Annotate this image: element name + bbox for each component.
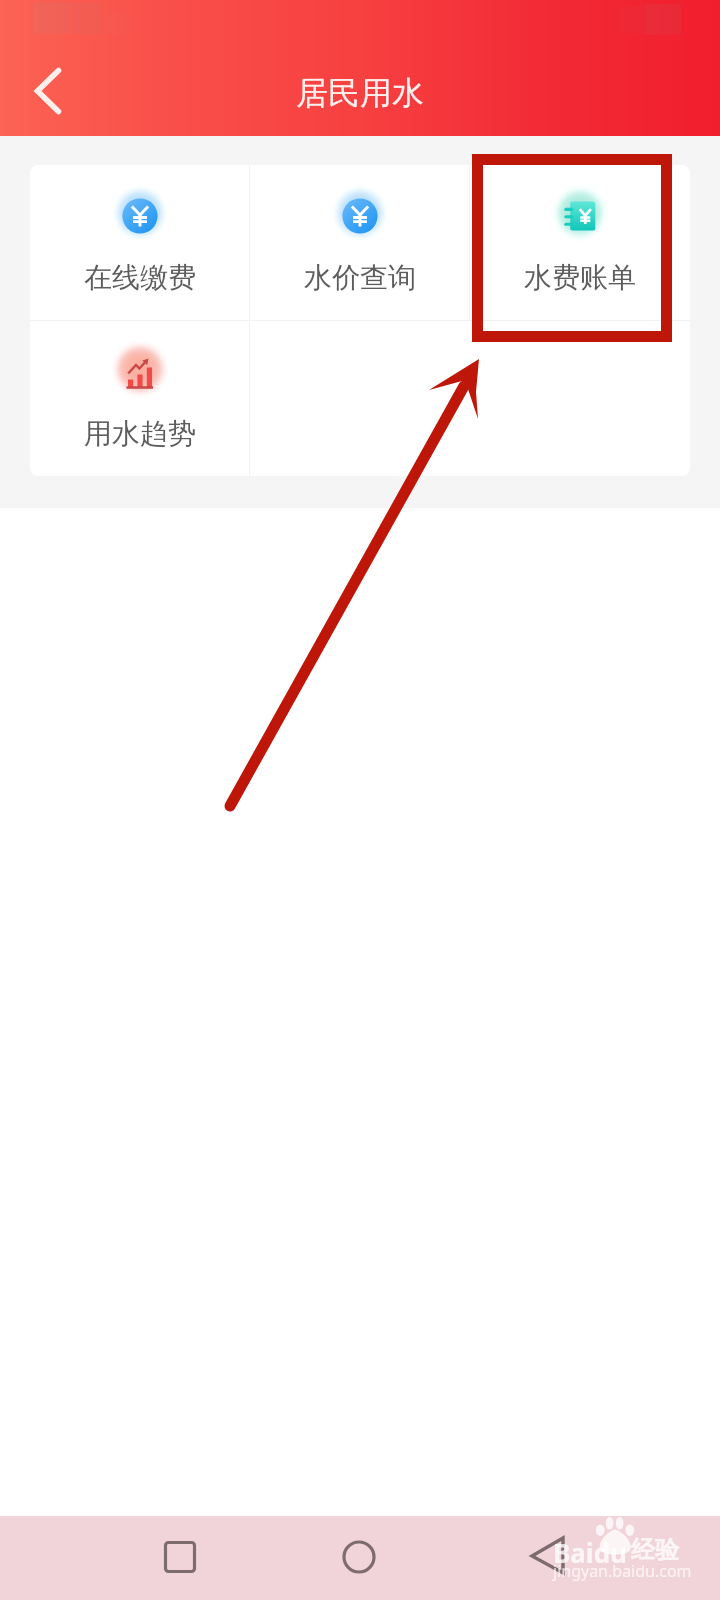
staticText: 水价查询 xyxy=(304,260,416,295)
button[interactable]: Recent apps xyxy=(150,1527,210,1587)
staticText: 居民用水 xyxy=(296,73,424,113)
staticText: 在线缴费 xyxy=(84,260,196,295)
button[interactable]: Back xyxy=(518,1526,578,1586)
staticText: 水费账单 xyxy=(524,260,636,295)
button[interactable]: 水费账单 xyxy=(470,165,689,320)
staticText: 用水趋势 xyxy=(84,416,196,451)
button[interactable]: 在线缴费 xyxy=(30,165,249,320)
staticText: 经验 xyxy=(631,1535,679,1565)
staticText: jingyan.baidu.com xyxy=(553,1560,692,1582)
button[interactable]: 水价查询 xyxy=(250,165,469,320)
staticText: Baidu xyxy=(553,1535,627,1570)
button[interactable]: Home xyxy=(329,1527,389,1587)
button[interactable]: Back xyxy=(18,62,76,120)
button[interactable]: 用水趋势 xyxy=(30,321,249,476)
